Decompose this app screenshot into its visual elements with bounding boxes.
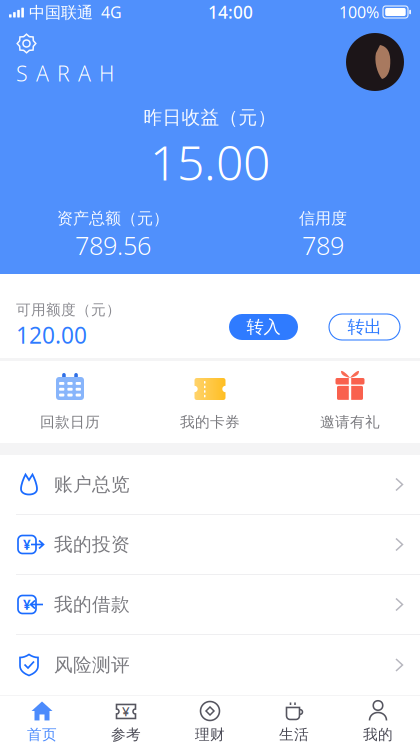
staticText: 资产总额（元） bbox=[57, 209, 169, 228]
button[interactable]: 转出 bbox=[329, 314, 400, 340]
staticText: 120.00 bbox=[16, 320, 87, 350]
staticText: 15.00 bbox=[150, 130, 270, 194]
button[interactable]: 风险测评 bbox=[0, 635, 420, 695]
staticText: 账户总览 bbox=[54, 473, 130, 496]
button[interactable]: Settings bbox=[16, 33, 37, 54]
staticText: ¥ bbox=[23, 596, 31, 613]
button[interactable]: Profile bbox=[346, 33, 404, 91]
staticText: 中国联通 4G bbox=[29, 1, 122, 23]
staticText: 转出 bbox=[347, 316, 381, 338]
staticText: 789 bbox=[302, 228, 344, 262]
staticText: 我的借款 bbox=[54, 593, 130, 616]
staticText: 789.56 bbox=[75, 228, 151, 262]
button[interactable]: 我的 bbox=[336, 696, 420, 747]
staticText: 邀请有礼 bbox=[320, 413, 380, 431]
button[interactable]: ¥ bbox=[0, 515, 420, 575]
staticText: 我的投资 bbox=[54, 533, 130, 556]
staticText: 我的 bbox=[363, 725, 393, 743]
button[interactable]: ¥ bbox=[0, 575, 420, 635]
staticText: 可用额度（元） bbox=[16, 301, 121, 319]
staticText: S A R A H bbox=[16, 59, 114, 87]
staticText: 我的卡券 bbox=[180, 413, 240, 431]
button[interactable]: 首页 bbox=[0, 696, 84, 747]
staticText: ¥ bbox=[122, 702, 130, 720]
button[interactable]: 理财 bbox=[168, 696, 252, 747]
staticText: 昨日收益（元） bbox=[143, 106, 276, 129]
button[interactable]: 转入 bbox=[229, 314, 298, 340]
staticText: 理财 bbox=[195, 725, 225, 743]
staticText: 14:00 bbox=[208, 0, 253, 23]
staticText: 100% bbox=[339, 1, 379, 23]
button[interactable]: 账户总览 bbox=[0, 455, 420, 515]
staticText: 转入 bbox=[246, 316, 280, 338]
button[interactable]: 生活 bbox=[252, 696, 336, 747]
button[interactable]: 邀请有礼 bbox=[280, 361, 420, 443]
button[interactable]: 我的卡券 bbox=[140, 361, 280, 443]
staticText: 生活 bbox=[279, 725, 309, 743]
staticText: 参考 bbox=[111, 725, 141, 743]
button[interactable]: 回款日历 bbox=[0, 361, 140, 443]
staticText: 回款日历 bbox=[40, 413, 100, 431]
staticText: 风险测评 bbox=[54, 653, 130, 676]
staticText: 首页 bbox=[27, 725, 57, 743]
staticText: ¥ bbox=[23, 536, 31, 553]
button[interactable]: ¥ bbox=[84, 696, 168, 747]
staticText: 信用度 bbox=[299, 209, 347, 228]
